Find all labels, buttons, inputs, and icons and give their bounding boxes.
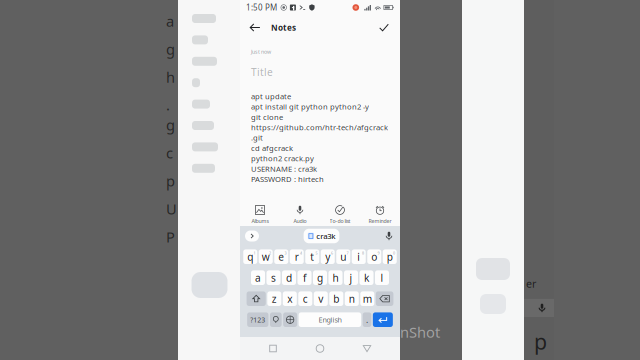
staticText: cra3k <box>316 231 335 241</box>
button[interactable]: y <box>321 249 335 264</box>
staticText: a <box>255 271 261 285</box>
button[interactable]: c <box>298 291 312 306</box>
staticText: h <box>332 271 338 285</box>
staticText: e <box>278 250 284 264</box>
button[interactable]: a <box>251 270 265 285</box>
button[interactable]: Home <box>306 337 334 359</box>
staticText: c <box>166 143 173 163</box>
staticText: d <box>286 271 292 285</box>
button[interactable]: Back <box>243 15 267 39</box>
staticText: w <box>262 250 270 264</box>
staticText: ?123 <box>250 315 265 324</box>
staticText: z <box>272 292 277 306</box>
button[interactable] <box>283 312 297 327</box>
button[interactable]: g <box>313 270 327 285</box>
staticText: f <box>303 271 306 285</box>
staticText: Audio <box>293 217 306 224</box>
button[interactable]: m <box>360 291 374 306</box>
staticText: g <box>317 271 323 285</box>
button[interactable]: z <box>267 291 281 306</box>
button[interactable] <box>247 291 266 306</box>
staticText: Notes <box>271 22 296 33</box>
button[interactable]: Back <box>353 337 381 359</box>
button[interactable]: Audio <box>280 197 320 226</box>
staticText: .git <box>251 132 263 143</box>
staticText: 9 <box>378 250 380 255</box>
staticText: b <box>333 292 339 306</box>
button[interactable]: Reminder <box>360 197 400 226</box>
staticText: a <box>166 11 174 31</box>
button[interactable]: n <box>345 291 359 306</box>
button[interactable]: f <box>297 270 311 285</box>
staticText: g <box>166 39 175 59</box>
staticText: .g <box>166 95 175 135</box>
button[interactable]: Voice input <box>384 230 394 241</box>
staticText: apt update <box>251 91 291 101</box>
staticText: P <box>166 227 175 247</box>
staticText: 4 <box>300 250 302 255</box>
button[interactable]: e <box>274 249 288 264</box>
staticText: p <box>387 250 393 264</box>
staticText: Just now <box>251 48 271 55</box>
button[interactable]: Albums <box>240 197 280 226</box>
button[interactable]: u <box>336 249 350 264</box>
staticText: h <box>166 67 175 87</box>
staticText: 6 <box>331 250 333 255</box>
staticText: c <box>303 292 308 306</box>
button[interactable]: English <box>299 312 361 327</box>
staticText: er <box>526 276 536 291</box>
staticText: USERNAME : cra3k <box>251 163 317 174</box>
staticText: PASSWORD : hirtech <box>251 174 324 184</box>
staticText: s <box>271 271 276 285</box>
staticText: j <box>349 271 352 285</box>
staticText: q <box>247 250 253 264</box>
staticText: u <box>340 250 346 264</box>
staticText: 8 <box>362 250 364 255</box>
staticText: InShot <box>395 322 440 342</box>
button[interactable]: cra3k <box>304 229 339 243</box>
staticText: l <box>380 271 383 285</box>
button[interactable]: q <box>243 249 257 264</box>
staticText: v <box>318 292 323 306</box>
button[interactable]: v <box>314 291 328 306</box>
button[interactable]: Recent apps <box>259 337 287 359</box>
button[interactable] <box>376 291 393 306</box>
button[interactable] <box>270 312 282 327</box>
button[interactable]: h <box>328 270 342 285</box>
button[interactable]: t <box>305 249 319 264</box>
button[interactable]: To-do list <box>320 197 360 226</box>
button[interactable]: p <box>383 249 397 264</box>
button[interactable]: ?123 <box>247 312 268 327</box>
button[interactable]: d <box>282 270 296 285</box>
button[interactable]: More suggestions <box>245 230 259 241</box>
staticText: i <box>357 250 360 264</box>
staticText: . <box>366 314 368 325</box>
button[interactable]: k <box>359 270 373 285</box>
button[interactable]: o <box>367 249 381 264</box>
staticText: https://github.com/htr-tech/afgcrack <box>251 122 388 132</box>
button[interactable]: . <box>363 312 371 327</box>
staticText: 5 <box>316 250 318 255</box>
staticText: 1 <box>254 250 256 255</box>
staticText: 0 <box>393 250 395 255</box>
button[interactable]: r <box>290 249 304 264</box>
staticText: 1:50 PM <box>246 2 277 13</box>
button[interactable]: l <box>375 270 389 285</box>
staticText: English <box>318 315 341 325</box>
button[interactable]: w <box>259 249 273 264</box>
staticText: p <box>166 171 175 191</box>
button[interactable]: b <box>329 291 343 306</box>
staticText: r <box>295 250 299 264</box>
staticText: t <box>310 250 314 264</box>
staticText: Albums <box>251 217 268 224</box>
button[interactable]: s <box>266 270 280 285</box>
staticText: 2 <box>269 250 271 255</box>
button[interactable]: j <box>344 270 358 285</box>
button[interactable] <box>373 312 393 327</box>
button[interactable]: i <box>352 249 366 264</box>
staticText: apt install git python python2 -y <box>251 101 369 112</box>
staticText: m <box>363 292 372 306</box>
button[interactable]: x <box>283 291 297 306</box>
staticText: Title <box>251 65 273 79</box>
button[interactable]: Save note <box>372 15 396 39</box>
